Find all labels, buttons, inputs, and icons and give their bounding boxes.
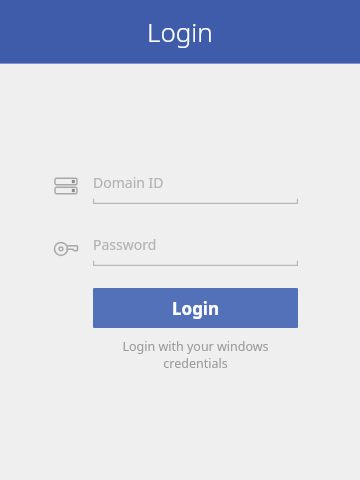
button[interactable]: Password field <box>0 226 360 266</box>
staticText: Domain ID <box>93 173 164 192</box>
button[interactable]: Domain ID field <box>0 164 360 204</box>
other: Password field <box>52 234 80 262</box>
staticText: Login with your windows credentials <box>93 338 298 372</box>
staticText: Login <box>172 297 220 320</box>
staticText: Password <box>93 235 157 254</box>
staticText: Login <box>147 14 213 49</box>
other: Domain ID field <box>52 172 80 200</box>
button[interactable]: Login <box>93 288 298 328</box>
